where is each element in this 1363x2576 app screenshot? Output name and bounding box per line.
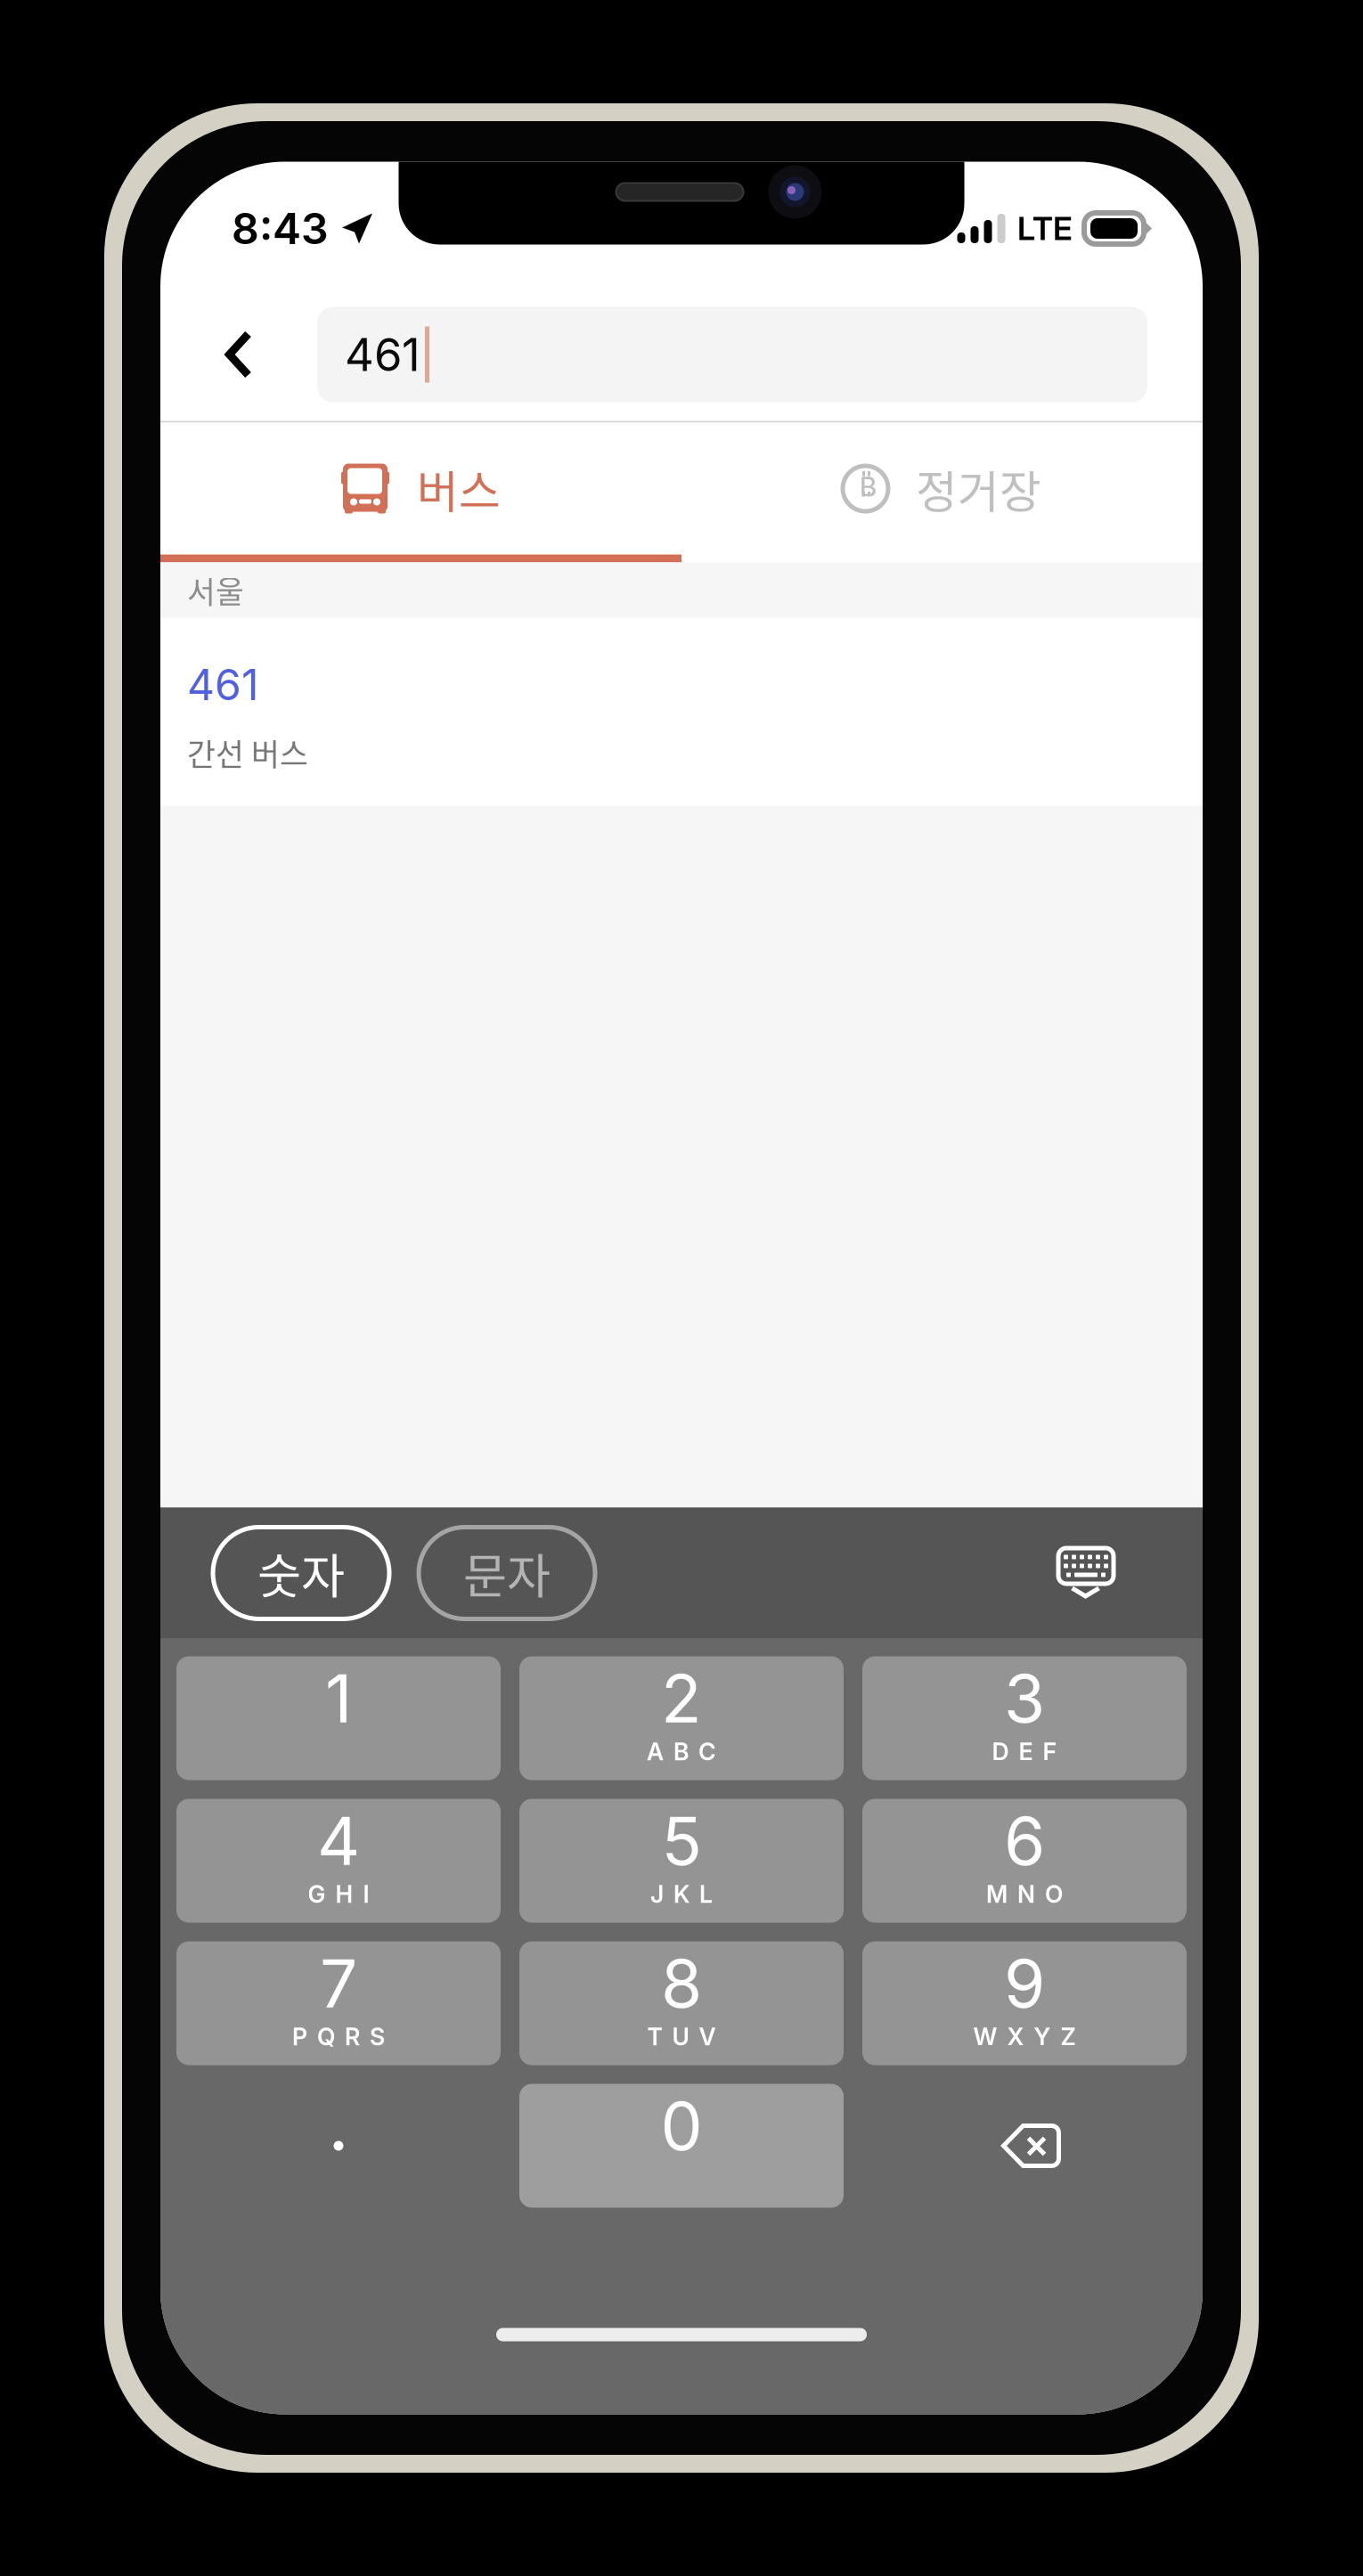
- button[interactable]: B: [681, 423, 1203, 554]
- staticText: 문자: [463, 1539, 551, 1607]
- staticText: 0: [661, 2086, 702, 2166]
- button[interactable]: 7: [176, 1941, 501, 2065]
- button[interactable]: Dot: [176, 2084, 501, 2208]
- staticText: WXYZ: [973, 2022, 1076, 2051]
- staticText: LTE: [1017, 209, 1073, 248]
- staticText: MNO: [986, 1880, 1063, 1909]
- staticText: TUV: [647, 2022, 716, 2051]
- staticText: DEF: [992, 1737, 1057, 1766]
- staticText: 8:43: [232, 203, 329, 254]
- staticText: 간선 버스: [187, 730, 308, 775]
- staticText: 3: [1004, 1658, 1045, 1739]
- button[interactable]: 5: [519, 1799, 844, 1923]
- button[interactable]: Delete: [862, 2084, 1187, 2208]
- staticText: JKL: [650, 1880, 713, 1909]
- button[interactable]: 문자: [419, 1527, 595, 1619]
- staticText: 정거장: [916, 456, 1041, 521]
- staticText: 숫자: [257, 1539, 345, 1607]
- staticText: GHI: [308, 1880, 369, 1909]
- staticText: PQRS: [292, 2022, 385, 2051]
- button[interactable]: 1: [176, 1656, 501, 1780]
- button[interactable]: 숫자: [213, 1527, 389, 1619]
- staticText: 5: [661, 1801, 702, 1881]
- staticText: 버스: [417, 456, 501, 521]
- staticText: 서울: [187, 568, 244, 612]
- staticText: 1: [325, 1658, 352, 1739]
- button[interactable]: 버스: [160, 423, 681, 554]
- button[interactable]: Hide keyboard: [1058, 1548, 1114, 1598]
- button[interactable]: 9: [862, 1941, 1187, 2065]
- button[interactable]: Back: [160, 307, 317, 402]
- staticText: 6: [1004, 1801, 1045, 1881]
- button[interactable]: 6: [862, 1799, 1187, 1923]
- staticText: 461: [187, 659, 259, 710]
- staticText: 9: [1004, 1943, 1045, 2024]
- staticText: 2: [661, 1658, 702, 1739]
- button[interactable]: 8: [519, 1941, 844, 2065]
- staticText: 8: [661, 1943, 702, 2024]
- button[interactable]: 3: [862, 1656, 1187, 1780]
- staticText: ABC: [647, 1737, 716, 1766]
- button[interactable]: 2: [519, 1656, 844, 1780]
- button[interactable]: 0: [519, 2084, 844, 2208]
- button[interactable]: 461: [160, 618, 1203, 806]
- staticText: 461: [345, 327, 420, 382]
- staticText: B: [860, 471, 877, 503]
- button[interactable]: 4: [176, 1799, 501, 1923]
- staticText: 4: [317, 1801, 360, 1881]
- staticText: 7: [320, 1943, 357, 2024]
